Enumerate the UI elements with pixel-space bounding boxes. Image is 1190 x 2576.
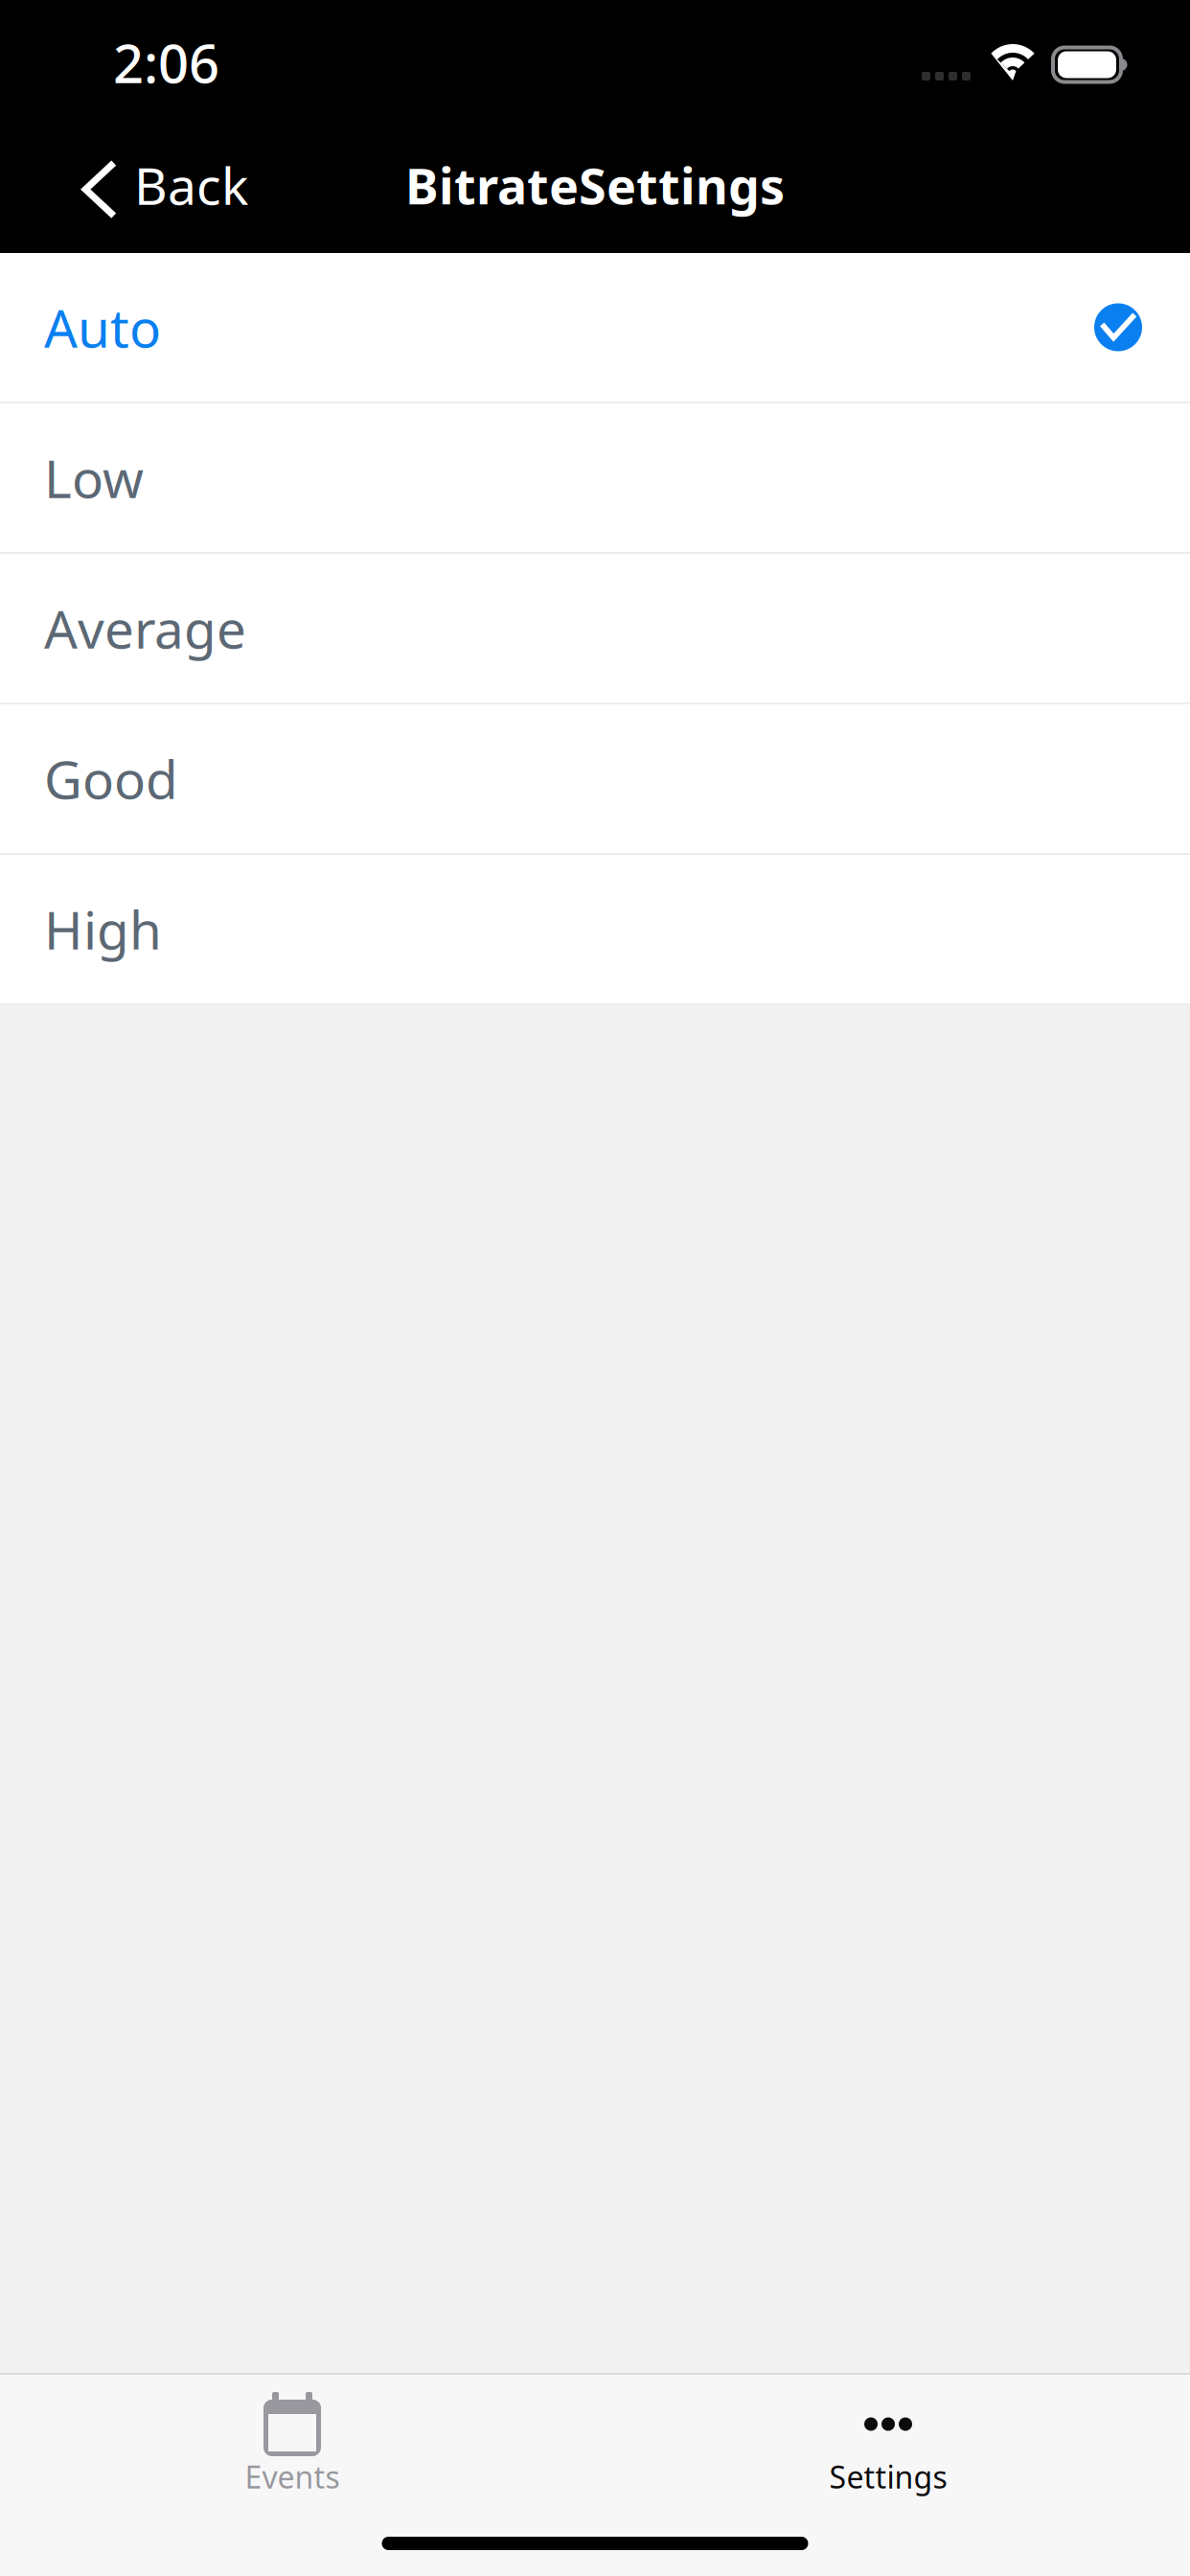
button[interactable]: Auto, selected bbox=[0, 253, 1190, 403]
button[interactable]: Average bbox=[0, 554, 1190, 704]
button[interactable]: Settings bbox=[590, 2375, 1186, 2511]
staticText: BitrateSettings bbox=[405, 152, 785, 218]
staticText: High bbox=[44, 894, 162, 964]
staticText: Good bbox=[44, 744, 178, 813]
button[interactable]: Good bbox=[0, 704, 1190, 855]
button[interactable]: Low bbox=[0, 403, 1190, 554]
button[interactable]: High bbox=[0, 855, 1190, 1005]
staticText: Back bbox=[134, 151, 248, 219]
staticText: Average bbox=[44, 593, 246, 663]
staticText: 2:06 bbox=[113, 27, 219, 98]
staticText: Auto bbox=[44, 292, 161, 362]
button[interactable]: Back bbox=[0, 128, 271, 241]
button[interactable]: Events bbox=[0, 2375, 590, 2511]
staticText: Settings bbox=[829, 2456, 947, 2497]
staticText: Events bbox=[245, 2456, 340, 2497]
staticText: Low bbox=[44, 443, 144, 513]
